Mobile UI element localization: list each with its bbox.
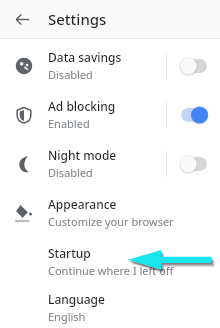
- button[interactable]: Off: [167, 41, 220, 90]
- button[interactable]: On: [167, 90, 220, 139]
- staticText: Data savings: [48, 49, 122, 65]
- button[interactable]: Night mode: [0, 139, 220, 188]
- other: Ad blocking: [15, 106, 33, 124]
- button[interactable]: Ad blocking: [0, 90, 220, 139]
- staticText: Disabled: [48, 67, 93, 82]
- other: Data savings: [15, 57, 33, 75]
- other: Appearance: [15, 204, 33, 222]
- staticText: Continue where I left off: [48, 263, 174, 278]
- other: Night mode: [15, 155, 33, 173]
- staticText: English: [48, 309, 86, 324]
- button[interactable]: Appearance: [0, 188, 220, 237]
- staticText: Startup: [48, 245, 91, 261]
- staticText: Language: [48, 291, 105, 307]
- button[interactable]: Back: [6, 3, 38, 35]
- button[interactable]: Data savings: [0, 41, 220, 90]
- staticText: Disabled: [48, 165, 93, 180]
- staticText: Night mode: [48, 147, 117, 163]
- staticText: Customize your browser: [48, 214, 174, 229]
- staticText: Ad blocking: [48, 98, 116, 114]
- button[interactable]: Off: [167, 139, 220, 188]
- button[interactable]: Startup: [0, 237, 220, 286]
- staticText: Appearance: [48, 196, 117, 212]
- staticText: Enabled: [48, 116, 90, 131]
- button[interactable]: Language: [0, 286, 220, 328]
- staticText: Settings: [48, 9, 107, 29]
